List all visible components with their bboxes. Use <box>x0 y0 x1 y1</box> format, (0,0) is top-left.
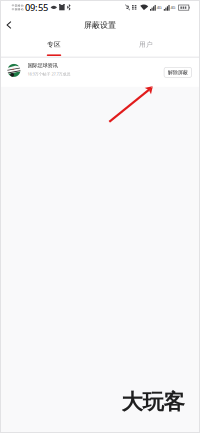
button[interactable]: 专区 <box>8 36 100 58</box>
staticText: 大玩客 <box>121 389 184 415</box>
staticText: 中国移动 <box>12 4 24 7</box>
staticText: 中国移动 <box>12 8 24 11</box>
button[interactable]: 返回 <box>1 16 17 34</box>
button[interactable]: 用户 <box>100 36 192 58</box>
staticText: 18.9万个帖子 27.7万成员 <box>28 71 71 77</box>
staticText: 屏蔽设置 <box>84 20 116 30</box>
staticText: 09:55 <box>25 1 48 14</box>
staticText: 专区 <box>47 40 61 49</box>
staticText: 4G <box>171 5 176 10</box>
staticText: 4G <box>157 5 162 10</box>
staticText: 国际足球资讯 <box>28 62 58 69</box>
staticText: 解除屏蔽 <box>168 69 188 76</box>
button[interactable]: 解除屏蔽 <box>164 67 192 77</box>
staticText: 用户 <box>139 40 153 49</box>
